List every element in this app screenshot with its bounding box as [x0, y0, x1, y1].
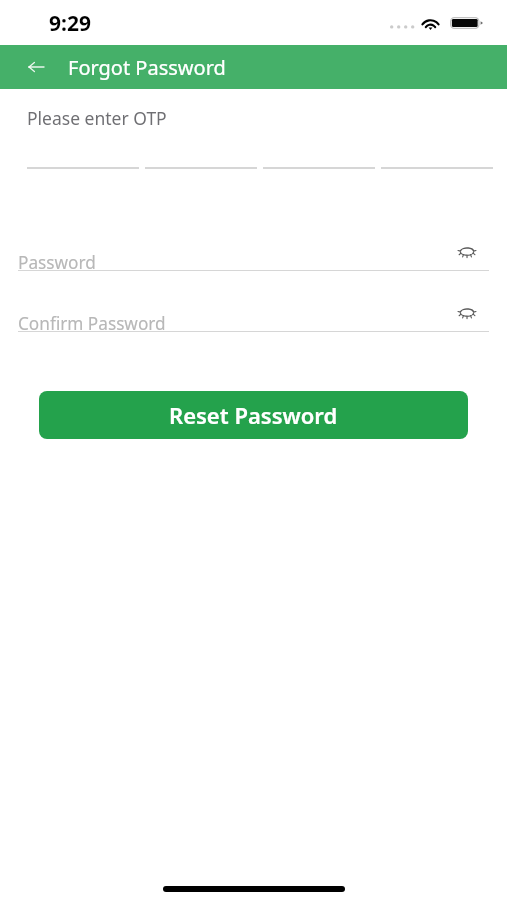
button[interactable]: Toggle password visibility	[452, 303, 482, 325]
staticText: 9:29	[49, 9, 91, 38]
staticText: Forgot Password	[68, 54, 226, 81]
button[interactable]: Reset Password	[39, 391, 468, 439]
staticText: Password	[18, 251, 96, 273]
button[interactable]: OTP digit 4	[381, 137, 493, 169]
button[interactable]: Password	[18, 237, 489, 259]
staticText: Reset Password	[169, 400, 338, 430]
button[interactable]: Toggle password visibility	[452, 242, 482, 264]
button[interactable]: OTP digit 3	[263, 137, 375, 169]
staticText: Confirm Password	[18, 312, 166, 334]
staticText: Please enter OTP	[27, 106, 167, 130]
button[interactable]: OTP digit 1	[27, 137, 139, 169]
button[interactable]: OTP digit 2	[145, 137, 257, 169]
button[interactable]: Back	[21, 52, 51, 82]
button[interactable]: Confirm Password	[18, 298, 489, 320]
